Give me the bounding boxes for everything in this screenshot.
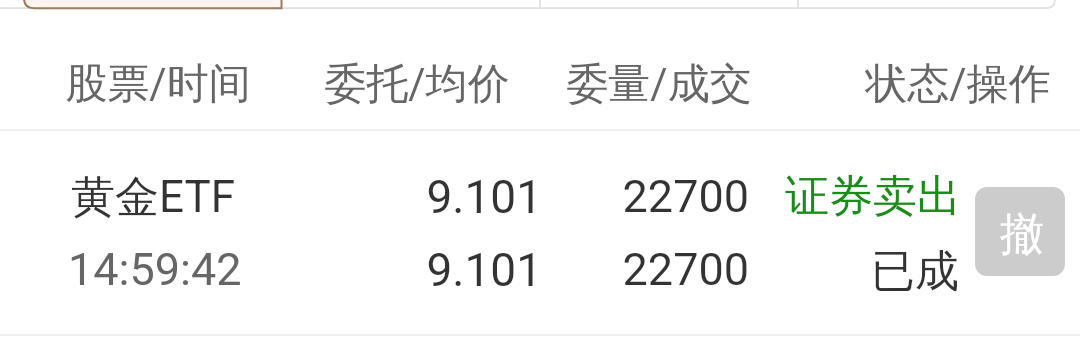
staticText: 22700 [0,243,749,296]
button[interactable] [0,130,1080,333]
staticText: 已成 [0,244,959,299]
staticText: 撤 [1000,207,1044,262]
staticText: 14:59:42 [68,243,242,296]
staticText: 股票/时间 [65,58,251,111]
button[interactable]: 历史委托 tab [540,0,798,14]
button[interactable]: 当日成交 tab [282,0,540,14]
staticText: 状态/操作 [865,58,1051,111]
staticText: 黄金ETF [71,170,236,225]
staticText: 9.101 [0,243,542,297]
button[interactable]: 撤单 Cancel order [975,187,1065,276]
button[interactable]: 委托/均价 [287,25,547,143]
button[interactable]: 历史成交 tab [798,0,1056,14]
button[interactable]: 股票/时间 [28,25,288,143]
staticText: 证券卖出 [0,169,961,224]
staticText: 9.101 [0,170,542,224]
staticText: 委托/均价 [324,58,510,111]
button[interactable]: 当日委托 tab, selected [24,0,282,14]
button[interactable]: 状态/操作 [828,25,1080,143]
staticText: 22700 [0,170,749,223]
staticText: 委量/成交 [566,58,752,111]
button[interactable]: 委量/成交 [529,25,789,143]
